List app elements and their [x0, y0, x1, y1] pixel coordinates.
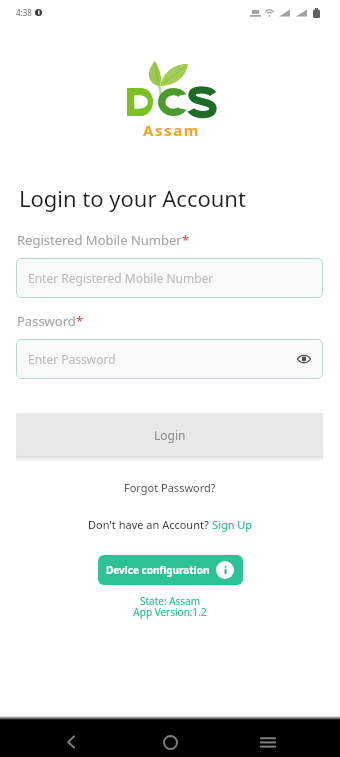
- staticText: Assam: [143, 120, 201, 140]
- staticText: Enter Registered Mobile Number: [28, 270, 214, 286]
- button[interactable]: Device configuration: [98, 555, 243, 585]
- button[interactable]: Back: [51, 722, 91, 757]
- staticText: *: [76, 312, 84, 330]
- staticText: Password: [17, 312, 76, 330]
- button[interactable]: Home: [150, 722, 190, 757]
- staticText: Login: [154, 427, 186, 443]
- staticText: State: Assam: [0, 594, 340, 608]
- staticText: Enter Password: [28, 351, 116, 367]
- button[interactable]: Sign Up: [212, 517, 253, 532]
- staticText: App Version:1.2: [0, 605, 340, 619]
- staticText: Don't have an Account?: [88, 517, 212, 532]
- staticText: Login to your Account: [19, 183, 246, 213]
- staticText: Forgot Password?: [124, 480, 216, 495]
- staticText: 4:38: [16, 7, 32, 18]
- button[interactable]: Toggle password visibility: [294, 349, 314, 369]
- button[interactable]: Login: [16, 413, 323, 456]
- button[interactable]: Enter Password: [16, 339, 323, 379]
- button[interactable]: Enter Registered Mobile Number: [16, 258, 323, 298]
- button[interactable]: Recent apps: [248, 722, 288, 757]
- staticText: Device configuration: [106, 563, 210, 577]
- staticText: Registered Mobile Number: [17, 231, 182, 249]
- staticText: Sign Up: [212, 517, 253, 532]
- staticText: *: [182, 231, 190, 249]
- button[interactable]: Forgot Password?: [116, 477, 224, 498]
